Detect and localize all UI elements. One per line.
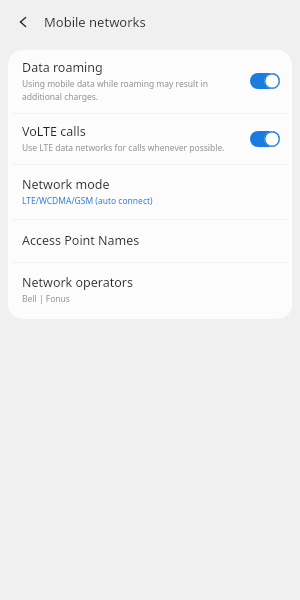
button[interactable]: Back	[10, 8, 38, 36]
staticText: LTE/WCDMA/GSM (auto connect)	[22, 195, 153, 207]
staticText: Network mode	[22, 176, 110, 193]
staticText: VoLTE calls	[22, 123, 86, 140]
staticText: Bell | Fonus	[22, 293, 70, 305]
button[interactable]: Toggle	[248, 127, 282, 151]
staticText: Network operators	[22, 274, 133, 291]
button[interactable]: Toggle	[248, 69, 282, 93]
button[interactable]: VoLTE calls	[8, 114, 292, 164]
staticText: Data roaming	[22, 59, 103, 76]
staticText: Use LTE data networks for calls whenever…	[22, 142, 225, 154]
staticText: Access Point Names	[22, 232, 140, 249]
button[interactable]: Network operators	[8, 263, 292, 319]
staticText: Using mobile data while roaming may resu…	[22, 78, 208, 90]
staticText: Mobile networks	[44, 13, 146, 31]
button[interactable]: Data roaming	[8, 50, 292, 113]
staticText: additional charges.	[22, 91, 99, 103]
button[interactable]: Network mode	[8, 165, 292, 219]
button[interactable]: Access Point Names	[8, 220, 292, 262]
